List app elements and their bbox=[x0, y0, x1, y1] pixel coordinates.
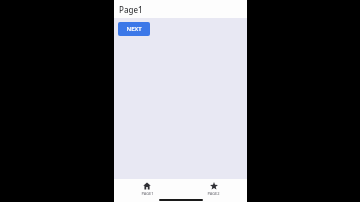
staticText: NEXT bbox=[126, 25, 142, 33]
staticText: Page1 bbox=[119, 4, 143, 15]
staticText: PAGE2 bbox=[207, 191, 220, 196]
staticText: PAGE1 bbox=[141, 191, 154, 196]
button[interactable]: Page 2 bbox=[180, 179, 247, 198]
button[interactable]: NEXT bbox=[118, 22, 150, 36]
button[interactable]: Page 1 bbox=[114, 179, 180, 198]
